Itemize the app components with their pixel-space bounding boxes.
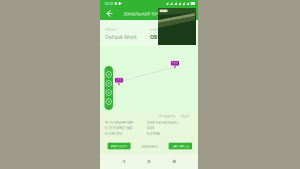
staticText: Зональная точ	[123, 10, 159, 17]
button[interactable]: ЗАПИСЬ	[169, 143, 192, 149]
button[interactable]: Recents	[173, 160, 176, 163]
button[interactable]: Map tool 1	[106, 72, 112, 77]
button[interactable]: Home	[147, 160, 150, 163]
staticText: Ещё	[181, 113, 189, 118]
staticText: Заменить	[141, 143, 158, 149]
staticText: 500	[172, 61, 178, 65]
staticText: ИМПОРТ	[111, 143, 128, 149]
button[interactable]: Открыть	[159, 113, 175, 118]
staticText: Открыть	[159, 113, 175, 118]
staticText: ОБ	[150, 33, 157, 40]
staticText: ЗАПИСЬ	[172, 143, 188, 149]
staticText: H 239.373	[105, 131, 122, 136]
staticText: E 37.974963 984	[105, 125, 132, 130]
button[interactable]: Map tool 3	[106, 90, 112, 95]
button[interactable]: Map tool 4	[106, 99, 112, 104]
button[interactable]: Ещё	[181, 113, 189, 118]
button[interactable]: Заменить	[139, 143, 161, 149]
button[interactable]: Map tool 2	[106, 81, 112, 86]
button[interactable]: Back	[122, 159, 125, 163]
button[interactable]: Back	[104, 7, 117, 20]
staticText: 0.21036	[147, 131, 160, 136]
staticText: N 55.956644 888	[105, 119, 133, 125]
staticText: Участок измерен…	[147, 119, 180, 125]
staticText: Вид	[150, 26, 157, 32]
staticText: Default Work	[105, 33, 137, 40]
staticText: 0.03	[147, 125, 154, 130]
staticText: 10:32	[104, 1, 113, 6]
staticText: 250	[116, 78, 122, 82]
staticText: Объект	[105, 26, 118, 32]
button[interactable]: ИМПОРТ	[108, 143, 131, 149]
